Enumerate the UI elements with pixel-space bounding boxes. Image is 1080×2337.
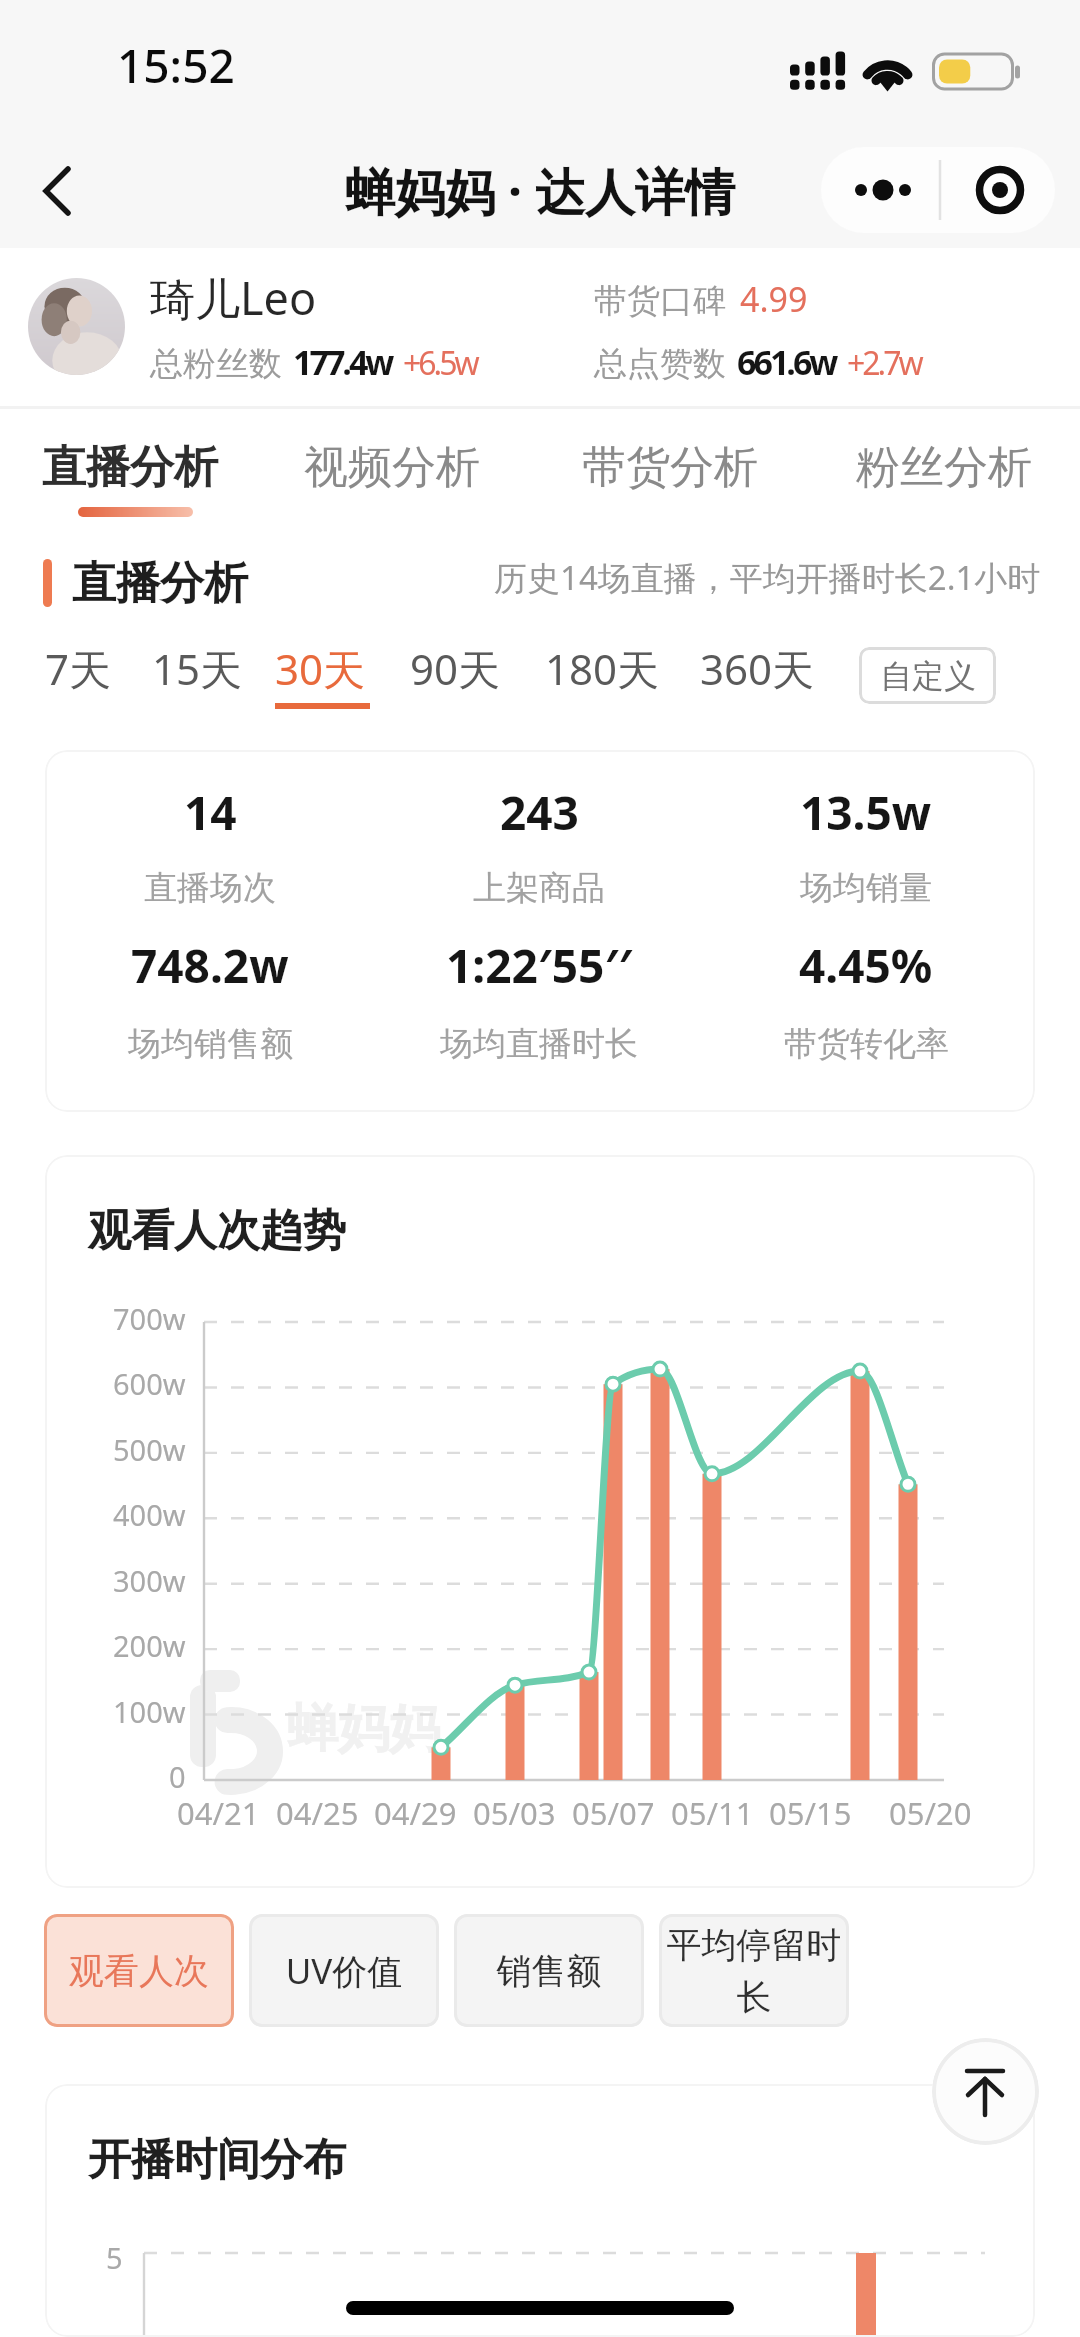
staticText: 05/15 <box>769 1792 852 1834</box>
staticText: 04/29 <box>374 1792 457 1834</box>
staticText: 蝉妈妈 <box>287 1697 440 1761</box>
staticText: 100w <box>113 1692 186 1731</box>
button[interactable]: UV价值 <box>249 1914 439 2027</box>
staticText: 带货转化率 <box>784 1023 949 1065</box>
staticText: +6.5w <box>403 341 477 385</box>
staticText: 360天 <box>700 640 815 697</box>
staticText: 300w <box>113 1561 186 1600</box>
button[interactable]: Back <box>7 145 107 235</box>
staticText: 14 <box>184 781 237 844</box>
staticText: 带货分析 <box>582 440 758 495</box>
staticText: 748.2w <box>131 934 289 997</box>
staticText: 4.45% <box>799 934 933 997</box>
staticText: 琦儿Leo <box>150 267 317 328</box>
staticText: 05/03 <box>473 1792 556 1834</box>
staticText: 0 <box>169 1757 186 1796</box>
staticText: 观看人次趋势 <box>88 1204 346 1258</box>
staticText: 90天 <box>410 640 501 697</box>
staticText: 自定义 <box>880 656 976 696</box>
button[interactable]: 带货分析 <box>540 409 800 530</box>
staticText: 直播分析 <box>72 556 248 611</box>
button[interactable]: 琦儿Leo <box>0 248 1080 406</box>
staticText: UV价值 <box>254 1947 434 1995</box>
staticText: 总点赞数 <box>594 343 726 385</box>
button[interactable]: 观看人次 <box>44 1914 234 2027</box>
staticText: 7天 <box>45 640 112 697</box>
staticText: 带货口碑 <box>594 280 726 322</box>
staticText: 总粉丝数 <box>150 343 282 385</box>
staticText: 销售额 <box>459 1949 639 1993</box>
staticText: 05/11 <box>671 1792 754 1834</box>
button[interactable]: 30天 <box>259 630 382 707</box>
staticText: 04/25 <box>276 1792 359 1834</box>
button[interactable]: 粉丝分析 <box>814 409 1074 530</box>
staticText: 场均销量 <box>800 867 932 909</box>
staticText: 243 <box>500 781 579 844</box>
staticText: 开播时间分布 <box>88 2133 346 2187</box>
staticText: 视频分析 <box>304 440 480 495</box>
button[interactable]: 视频分析 <box>262 409 522 530</box>
button[interactable]: Mini program menu <box>821 147 1055 233</box>
staticText: 200w <box>113 1626 186 1665</box>
button[interactable]: Scroll to top <box>932 2038 1039 2145</box>
button[interactable]: 销售额 <box>454 1914 644 2027</box>
staticText: 场均销售额 <box>128 1023 293 1065</box>
staticText: 05/20 <box>889 1792 972 1834</box>
staticText: 600w <box>113 1364 186 1403</box>
button[interactable]: 平均停留时长 <box>659 1914 849 2027</box>
staticText: 177.4w <box>293 339 392 385</box>
staticText: 500w <box>113 1430 186 1469</box>
staticText: 平均停留时长 <box>664 1923 844 2019</box>
staticText: 661.6w <box>737 339 836 385</box>
staticText: 5 <box>106 2238 123 2277</box>
staticText: 4.99 <box>740 276 808 322</box>
staticText: 粉丝分析 <box>856 440 1032 495</box>
staticText: 180天 <box>545 640 660 697</box>
staticText: 蝉妈妈 · 达人详情 <box>345 157 736 225</box>
button[interactable]: 直播分析 <box>0 409 260 530</box>
staticText: 700w <box>113 1299 186 1338</box>
staticText: +2.7w <box>847 341 921 385</box>
staticText: 05/07 <box>572 1792 655 1834</box>
staticText: 15:52 <box>117 34 235 97</box>
staticText: 观看人次 <box>49 1949 229 1993</box>
staticText: 直播分析 <box>42 440 218 495</box>
button[interactable]: 180天 <box>529 630 676 707</box>
button[interactable]: 15天 <box>136 630 259 707</box>
button[interactable]: 自定义 <box>859 647 996 704</box>
staticText: 历史14场直播，平均开播时长2.1小时 <box>494 555 1041 600</box>
staticText: 上架商品 <box>473 867 605 909</box>
staticText: 1:22′55′′ <box>446 934 633 997</box>
staticText: 直播场次 <box>144 867 276 909</box>
button[interactable]: 7天 <box>29 630 128 707</box>
button[interactable]: 360天 <box>684 630 831 707</box>
staticText: 30天 <box>275 640 366 697</box>
staticText: 15天 <box>152 640 243 697</box>
staticText: 场均直播时长 <box>440 1023 638 1065</box>
staticText: 04/21 <box>177 1792 260 1834</box>
staticText: 13.5w <box>800 781 932 844</box>
button[interactable]: 90天 <box>394 630 517 707</box>
staticText: 400w <box>113 1495 186 1534</box>
